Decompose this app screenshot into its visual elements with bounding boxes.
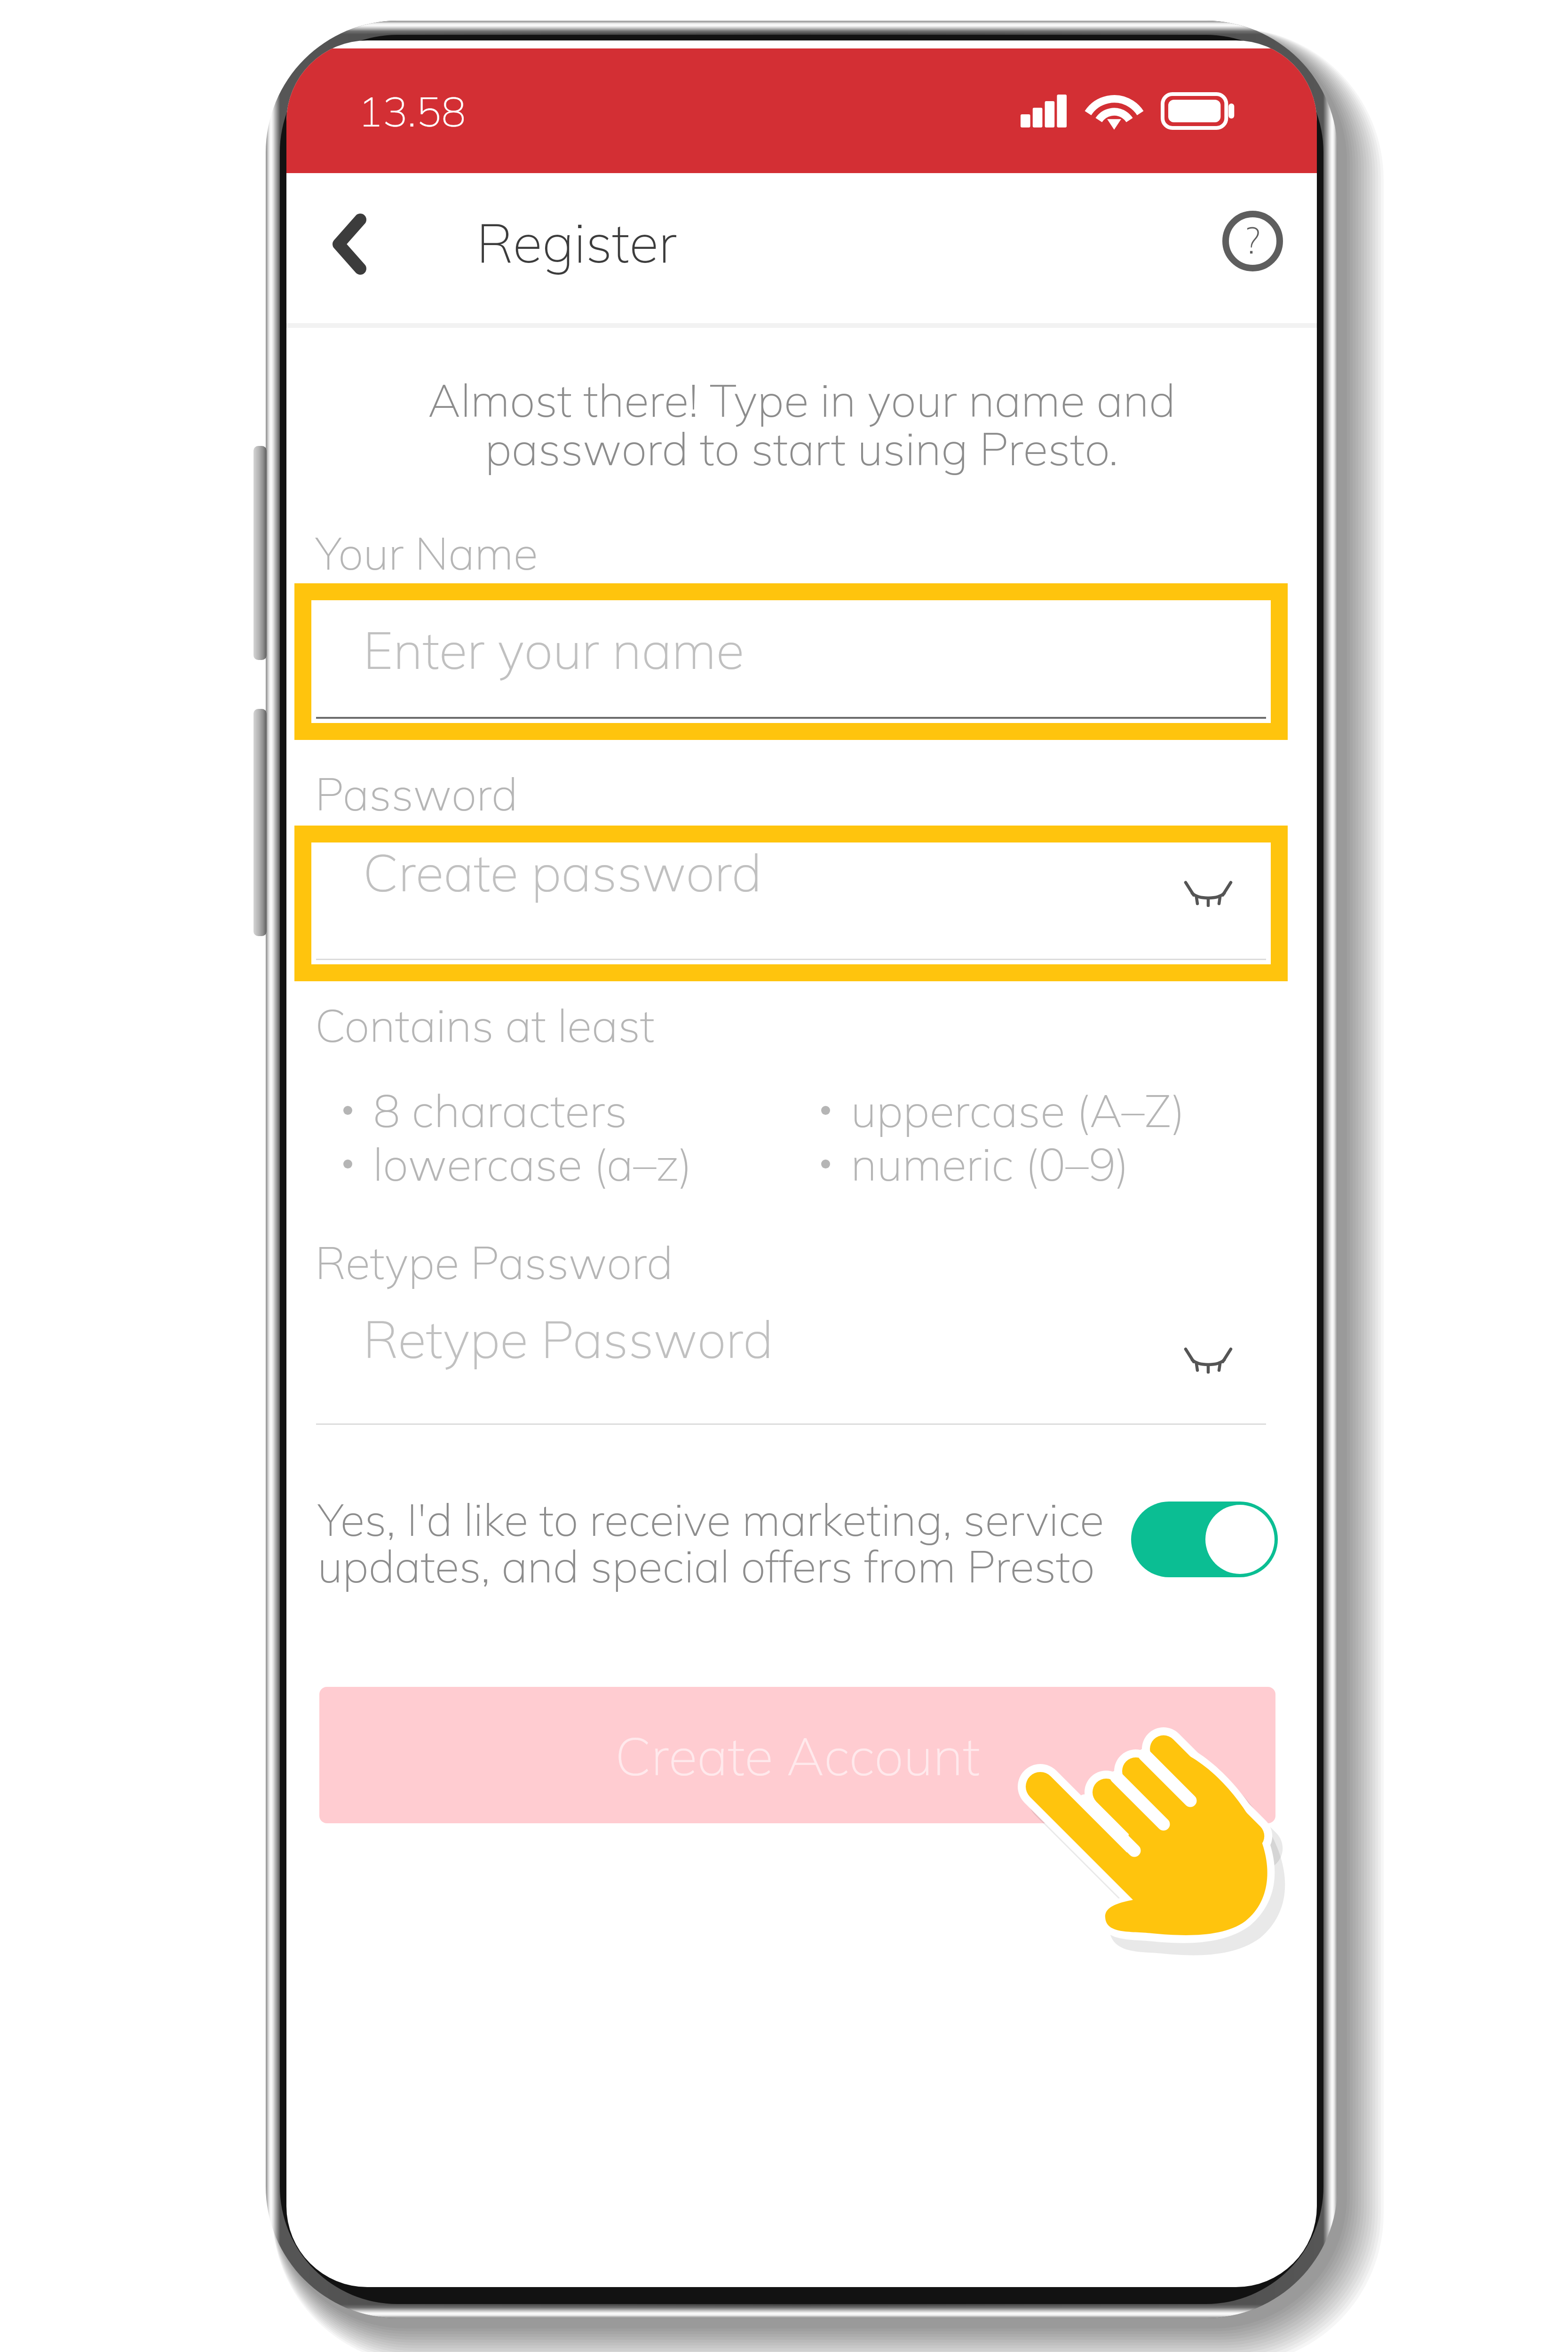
staticText: Password [315,765,518,822]
staticText: Retype Password [315,1234,673,1290]
staticText: 13.58 [358,85,466,137]
staticText: 8 characters [373,1081,627,1139]
button[interactable]: Back [297,178,386,267]
staticText: ? [1244,217,1260,263]
button[interactable]: Help [1208,196,1297,286]
staticText: Almost there! Type in your name and pass… [286,371,1317,477]
staticText: numeric (0–9) [851,1135,1129,1192]
staticText: uppercase (A–Z) [851,1081,1185,1139]
staticText: Create password [363,839,762,904]
button[interactable]: Create Account [319,1687,1275,1823]
staticText: Your Name [315,524,538,581]
staticText: Enter your name [363,617,744,682]
staticText: Contains at least [315,997,655,1053]
button[interactable]: Show password [1170,1321,1246,1398]
staticText: Yes, I'd like to receive marketing, serv… [317,1491,1104,1594]
button[interactable]: Show password [1170,854,1246,931]
other: Tap here [1011,1722,1284,1938]
button[interactable]: Marketing updates toggle [1131,1502,1278,1577]
staticText: Retype Password [363,1306,774,1371]
staticText: Register [476,208,677,276]
staticText: lowercase (a–z) [373,1135,692,1192]
staticText: Create Account [615,1722,980,1788]
